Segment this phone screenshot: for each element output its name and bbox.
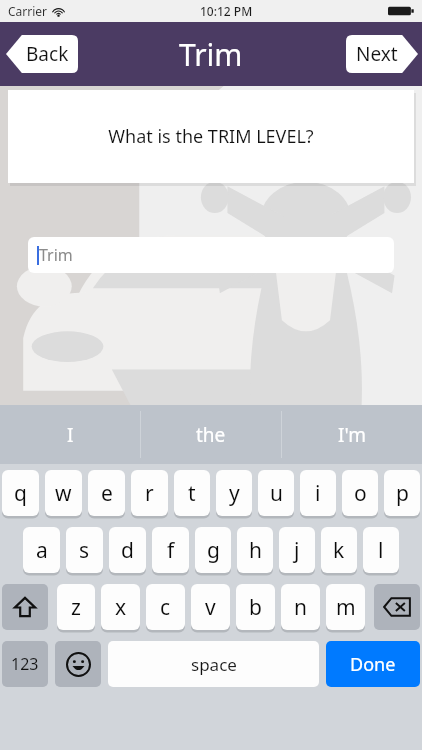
button[interactable]: d (109, 527, 146, 573)
button[interactable]: o (342, 470, 378, 516)
button[interactable]: i (300, 470, 336, 516)
button[interactable]: h (237, 527, 273, 573)
staticText: m (336, 593, 356, 622)
button[interactable]: m (326, 584, 365, 630)
staticText: What is the TRIM LEVEL? (108, 124, 314, 149)
button[interactable]: b (236, 584, 275, 630)
staticText: s (79, 536, 90, 565)
staticText: e (101, 479, 113, 508)
staticText: p (396, 479, 409, 508)
button[interactable]: Next (346, 35, 418, 73)
staticText: r (145, 479, 154, 508)
button[interactable]: q (2, 470, 39, 516)
button[interactable]: l (363, 527, 399, 573)
button[interactable]: j (279, 527, 315, 573)
staticText: t (188, 479, 196, 508)
button[interactable]: space (108, 641, 319, 687)
staticText: o (354, 479, 367, 508)
button[interactable]: k (321, 527, 357, 573)
button[interactable]: y (216, 470, 252, 516)
button[interactable]: c (146, 584, 185, 630)
button[interactable]: f (152, 527, 189, 573)
button[interactable]: t (174, 470, 210, 516)
button[interactable]: the (141, 405, 281, 464)
staticText: space (191, 653, 237, 676)
staticText: k (333, 536, 345, 565)
button[interactable]: s (66, 527, 103, 573)
staticText: Trim (39, 244, 73, 266)
staticText: Trim (179, 34, 243, 75)
button[interactable]: Shift (2, 584, 48, 630)
staticText: 10:12 PM (200, 3, 253, 19)
button[interactable]: I (0, 405, 140, 464)
staticText: Next (356, 41, 398, 67)
button[interactable]: v (191, 584, 230, 630)
button[interactable]: 123 (2, 641, 48, 687)
button[interactable]: p (384, 470, 420, 516)
staticText: n (294, 593, 307, 622)
staticText: q (14, 479, 27, 508)
button[interactable]: r (131, 470, 168, 516)
staticText: z (71, 593, 81, 622)
staticText: d (121, 536, 134, 565)
staticText: a (36, 536, 48, 565)
button[interactable]: Emoji (55, 641, 101, 687)
staticText: l (378, 536, 384, 565)
button[interactable]: Back (6, 35, 78, 73)
button[interactable]: w (45, 470, 82, 516)
button[interactable]: n (281, 584, 320, 630)
button[interactable]: Trim (28, 237, 394, 273)
staticText: f (167, 536, 175, 565)
button[interactable]: u (258, 470, 294, 516)
button[interactable]: Backspace (374, 584, 420, 630)
staticText: v (205, 593, 216, 622)
staticText: h (249, 536, 262, 565)
staticText: Back (26, 41, 69, 67)
staticText: w (55, 479, 72, 508)
staticText: Carrier (8, 3, 48, 19)
staticText: j (294, 536, 300, 565)
staticText: I'm (338, 422, 366, 448)
staticText: I (67, 422, 74, 448)
staticText: the (196, 422, 226, 448)
staticText: u (270, 479, 283, 508)
button[interactable]: I'm (282, 405, 422, 464)
button[interactable]: x (101, 584, 140, 630)
staticText: Done (350, 652, 396, 677)
staticText: c (160, 593, 171, 622)
staticText: y (229, 479, 240, 508)
staticText: g (207, 536, 220, 565)
button[interactable]: e (88, 470, 125, 516)
button[interactable]: z (57, 584, 95, 630)
button[interactable]: a (23, 527, 60, 573)
staticText: x (115, 593, 127, 622)
button[interactable]: g (195, 527, 231, 573)
staticText: b (249, 593, 262, 622)
staticText: i (315, 479, 321, 508)
staticText: 123 (11, 653, 39, 675)
button[interactable]: Done (326, 641, 420, 687)
